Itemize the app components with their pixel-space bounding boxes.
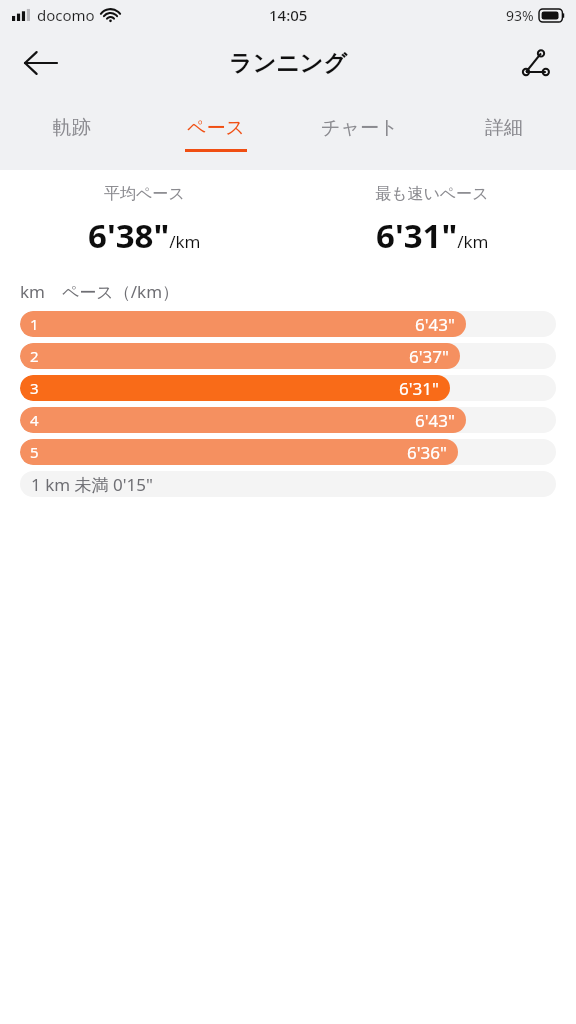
button[interactable]: 4	[20, 407, 556, 433]
button[interactable]: Back	[8, 31, 72, 95]
staticText: 3	[30, 378, 39, 398]
staticText: 6'31"/km	[376, 213, 489, 258]
staticText: 5	[30, 442, 39, 462]
button[interactable]: 5	[20, 439, 556, 465]
staticText: km ペース（/km）	[20, 280, 180, 303]
staticText: 軌跡	[53, 116, 91, 140]
staticText: 6'31"	[399, 377, 439, 400]
staticText: 最も速いペース	[375, 184, 489, 204]
staticText: 6'36"	[407, 441, 447, 464]
staticText: 6'43"	[415, 313, 455, 336]
staticText: 4	[30, 410, 39, 430]
staticText: ランニング	[229, 49, 347, 78]
button[interactable]: 詳細	[432, 96, 576, 170]
staticText: 2	[30, 346, 39, 366]
button[interactable]: 3	[20, 375, 556, 401]
staticText: 6'38"/km	[88, 213, 201, 258]
staticText: 14:05	[269, 5, 308, 25]
button[interactable]: Share route	[504, 32, 566, 94]
staticText: docomo	[37, 5, 95, 25]
staticText: 93%	[506, 6, 534, 25]
button[interactable]: 2	[20, 343, 556, 369]
staticText: 詳細	[485, 116, 523, 140]
staticText: ペース	[187, 116, 245, 140]
staticText: 1 km 未満 0'15"	[31, 473, 153, 496]
button[interactable]: 1	[20, 311, 556, 337]
button[interactable]: ペース	[144, 96, 288, 170]
staticText: 1	[30, 314, 39, 334]
button[interactable]: チャート	[288, 96, 432, 170]
staticText: 6'37"	[409, 345, 449, 368]
button[interactable]: 1 km 未満 0'15"	[20, 471, 556, 497]
staticText: チャート	[321, 116, 399, 140]
staticText: 6'43"	[415, 409, 455, 432]
button[interactable]: 軌跡	[0, 96, 144, 170]
staticText: 平均ペース	[104, 184, 185, 204]
